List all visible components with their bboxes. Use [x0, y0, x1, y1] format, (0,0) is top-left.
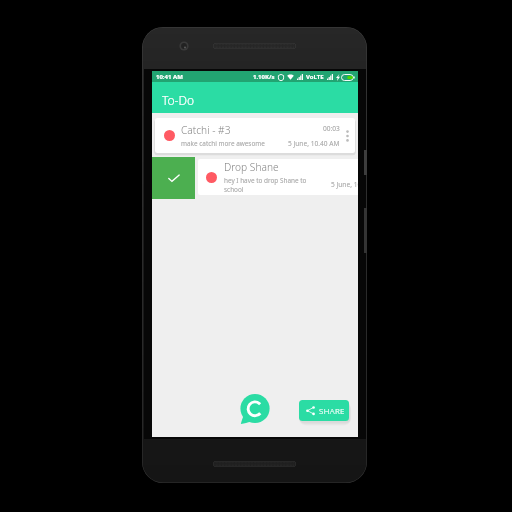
- button[interactable]: Catchi - #3: [155, 118, 355, 153]
- staticText: make catchi more awesome: [181, 139, 265, 148]
- staticText: 1.10K/s: [253, 73, 275, 81]
- staticText: To-Do: [162, 92, 195, 108]
- staticText: 5 June, 10.40 AM: [288, 139, 340, 148]
- button[interactable]: Mark done: [152, 157, 195, 199]
- button[interactable]: New chat: [239, 392, 273, 426]
- button[interactable]: Drop Shane: [198, 159, 358, 195]
- staticText: 10:41 AM: [156, 73, 183, 81]
- button[interactable]: More options: [342, 124, 353, 148]
- staticText: Drop Shane: [224, 160, 279, 174]
- staticText: VoLTE: [306, 73, 324, 81]
- button[interactable]: SHARE: [299, 400, 349, 421]
- staticText: SHARE: [319, 405, 345, 416]
- staticText: Catchi - #3: [181, 123, 231, 137]
- staticText: hey I have to drop Shane to school: [224, 176, 314, 194]
- staticText: 5 June, 10.40 AM: [331, 180, 358, 189]
- button[interactable]: To-Do: [152, 82, 358, 113]
- staticText: 00:03: [323, 124, 340, 133]
